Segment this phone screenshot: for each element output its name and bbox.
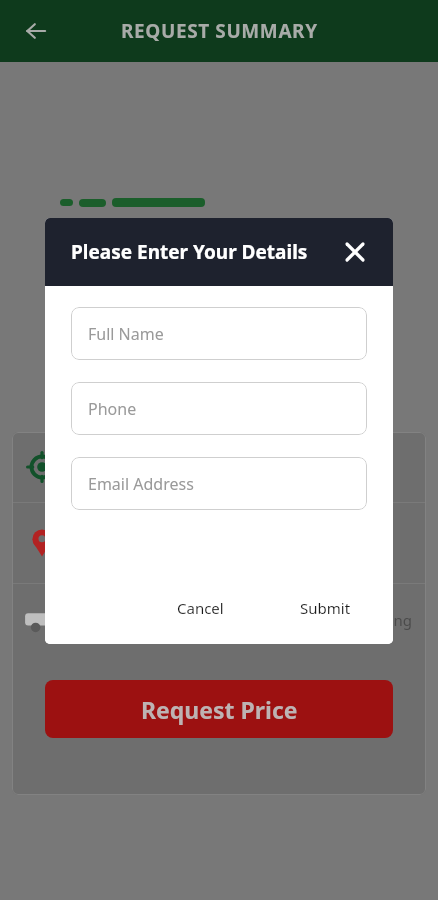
button[interactable]: Close [337, 234, 373, 270]
staticText: Submit [300, 598, 351, 618]
staticText: Phone [88, 398, 137, 420]
staticText: Mini Van [98, 610, 207, 630]
staticText: Email Address [88, 473, 194, 495]
button[interactable]: Back [12, 7, 60, 55]
staticText: Pending [315, 610, 412, 630]
button[interactable]: Cancel [163, 590, 238, 626]
button[interactable]: Submit [286, 590, 365, 626]
button[interactable]: Email Address [71, 457, 367, 510]
button[interactable]: Request Price [45, 680, 393, 738]
button[interactable]: Full Name [71, 307, 367, 360]
staticText: Please Enter Your Details [71, 239, 308, 265]
staticText: Cancel [177, 598, 224, 618]
staticText: REQUEST SUMMARY [121, 18, 318, 44]
staticText: Full Name [88, 323, 164, 345]
staticText: 9/13/2022 [207, 610, 315, 630]
staticText: Request Price [141, 694, 298, 725]
button[interactable]: Phone [71, 382, 367, 435]
